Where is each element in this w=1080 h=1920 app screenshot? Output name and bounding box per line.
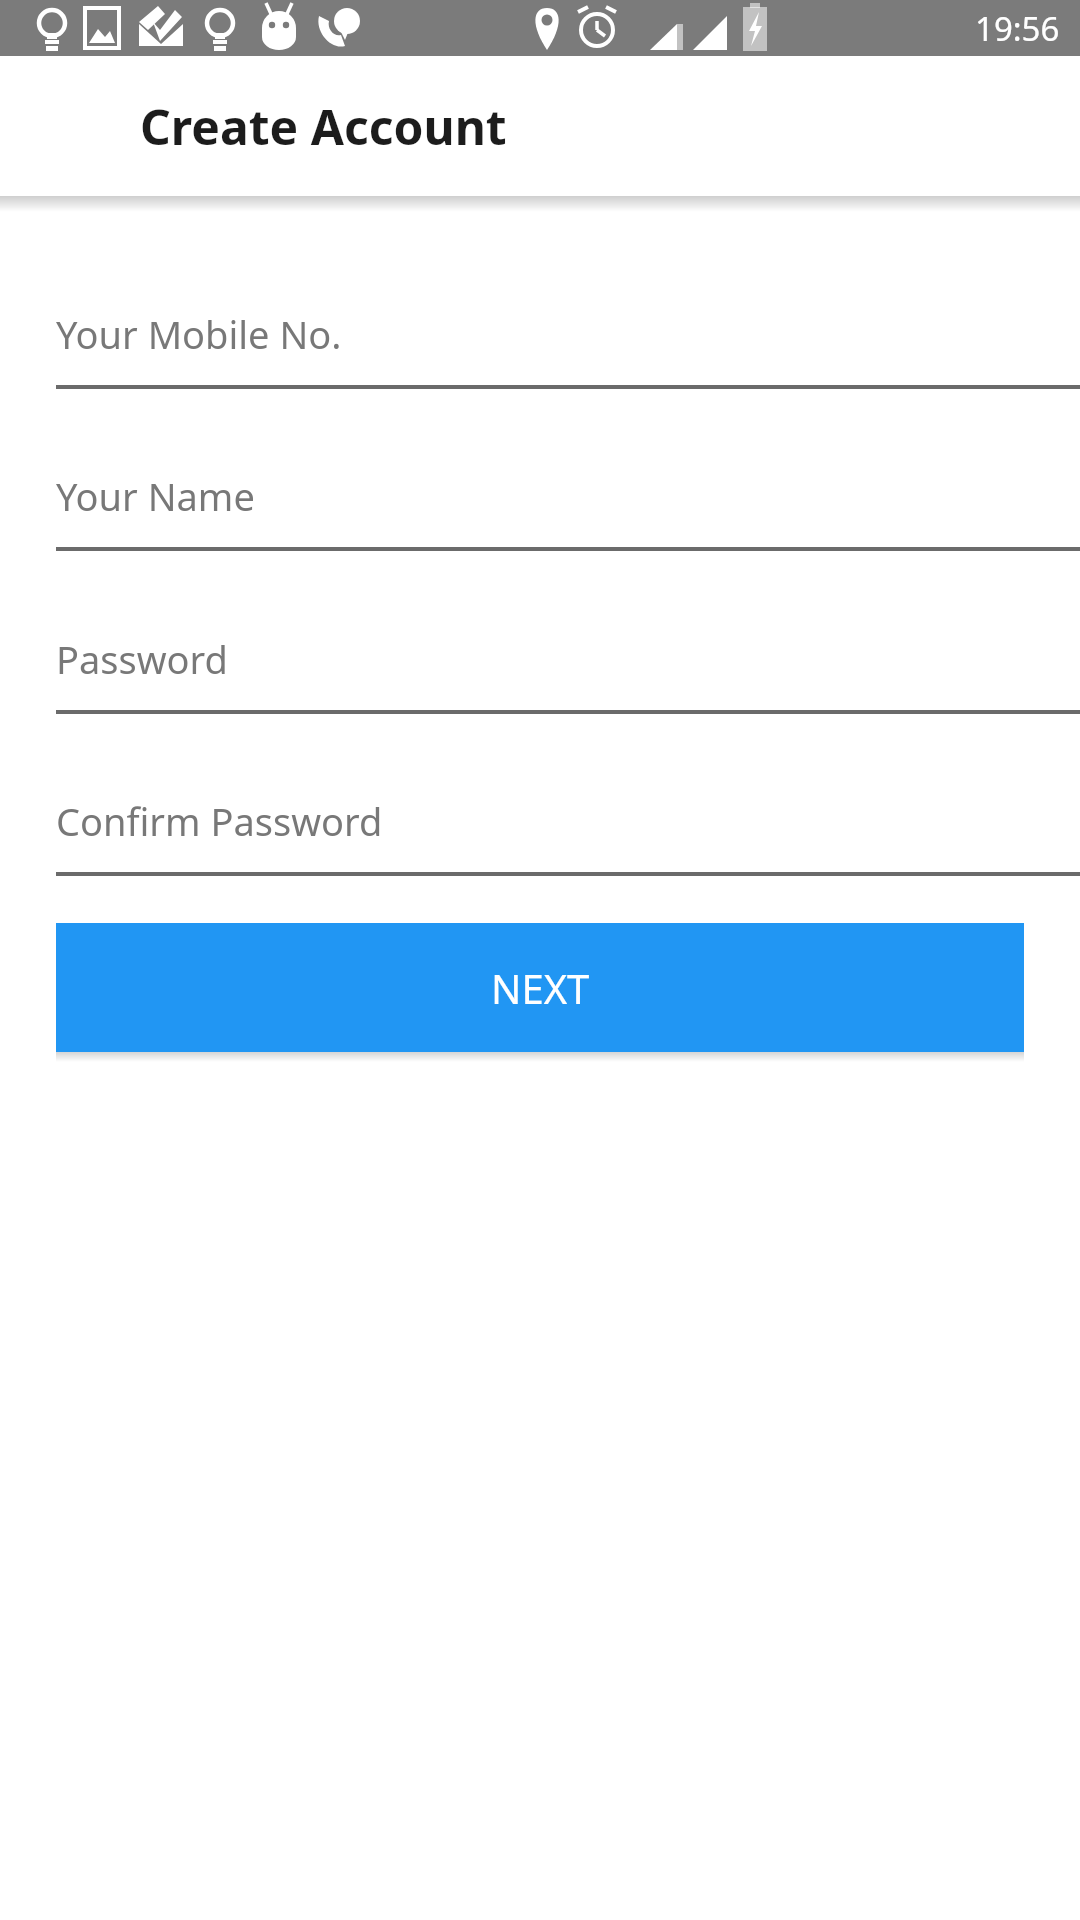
- staticText: Your Name: [56, 470, 255, 522]
- staticText: Your Mobile No.: [56, 308, 342, 360]
- button[interactable]: NEXT: [56, 923, 1024, 1052]
- staticText: Password: [56, 633, 228, 685]
- staticText: NEXT: [491, 961, 590, 1015]
- button[interactable]: Your Name: [56, 462, 1080, 552]
- button[interactable]: Confirm Password: [56, 787, 1080, 877]
- staticText: 19:56: [975, 6, 1060, 51]
- button[interactable]: Password: [56, 625, 1080, 715]
- button[interactable]: Your Mobile No.: [56, 300, 1080, 390]
- staticText: Create Account: [140, 94, 507, 159]
- staticText: Confirm Password: [56, 795, 383, 847]
